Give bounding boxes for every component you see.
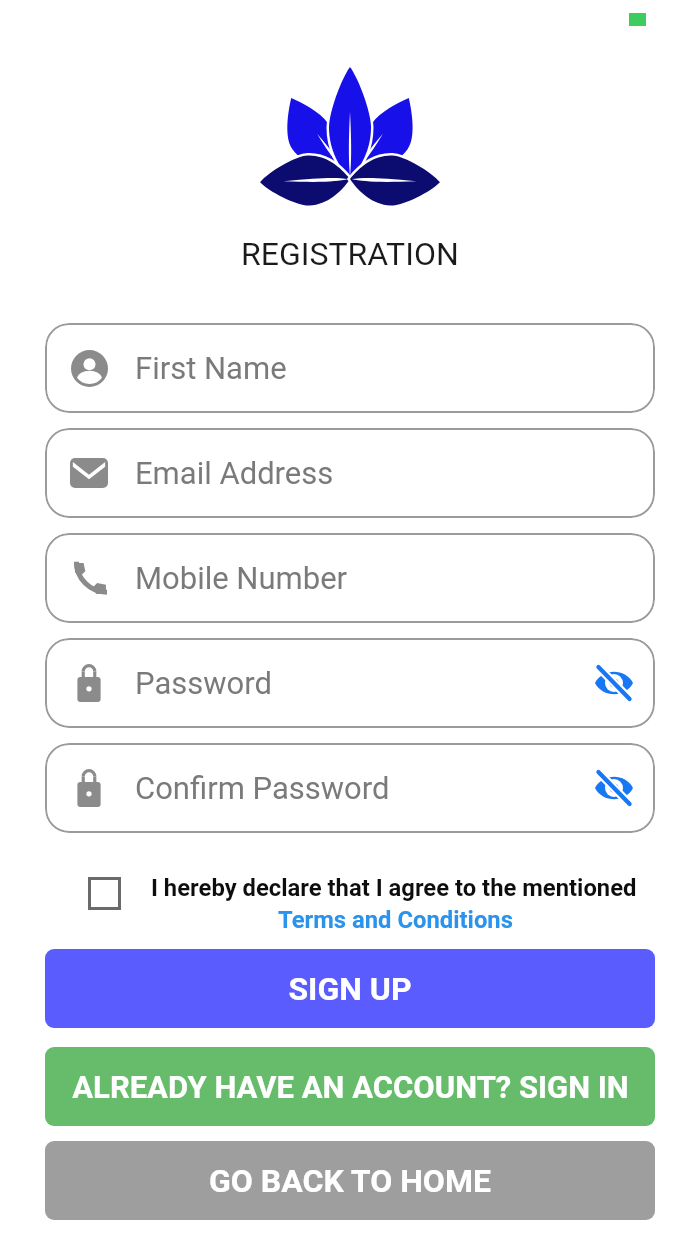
staticText: Confirm Password [135, 770, 390, 806]
staticText: REGISTRATION [241, 235, 459, 273]
staticText: Email Address [135, 455, 334, 491]
button[interactable]: Confirm Password [45, 743, 655, 833]
button[interactable]: GO BACK TO HOME [45, 1141, 655, 1220]
staticText: SIGN UP [288, 970, 412, 1008]
button[interactable]: Agree checkbox [88, 877, 121, 910]
button[interactable]: Email Address [45, 428, 655, 518]
staticText: I hereby declare that I agree to the men… [151, 874, 637, 902]
staticText: GO BACK TO HOME [209, 1162, 491, 1200]
button[interactable]: Mobile Number [45, 533, 655, 623]
staticText: ALREADY HAVE AN ACCOUNT? SIGN IN [72, 1069, 629, 1105]
button[interactable]: Toggle password visibility [591, 660, 637, 706]
button[interactable]: First Name [45, 323, 655, 413]
staticText: Mobile Number [135, 560, 348, 596]
button[interactable]: SIGN UP [45, 949, 655, 1028]
button[interactable]: ALREADY HAVE AN ACCOUNT? SIGN IN [45, 1047, 655, 1126]
button[interactable]: Toggle password visibility [591, 765, 637, 811]
staticText: First Name [135, 350, 287, 386]
button[interactable]: Terms and Conditions [278, 906, 513, 934]
staticText: Password [135, 665, 272, 701]
button[interactable]: Password [45, 638, 655, 728]
